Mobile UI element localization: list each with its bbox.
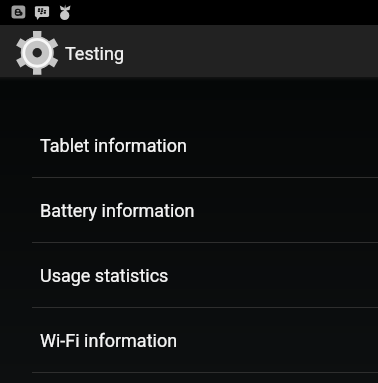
staticText: Testing bbox=[65, 43, 125, 64]
other: Settings bbox=[14, 29, 60, 75]
staticText: Wi-Fi information bbox=[40, 330, 178, 351]
button[interactable]: Settings bbox=[0, 25, 140, 77]
staticText: Battery information bbox=[40, 200, 195, 221]
button[interactable]: Usage statistics bbox=[0, 243, 378, 307]
button[interactable]: Wi-Fi information bbox=[0, 308, 378, 372]
staticText: Tablet information bbox=[40, 135, 187, 156]
staticText: Usage statistics bbox=[40, 265, 169, 286]
button[interactable]: Battery information bbox=[0, 178, 378, 242]
button[interactable]: Tablet information bbox=[0, 113, 378, 177]
